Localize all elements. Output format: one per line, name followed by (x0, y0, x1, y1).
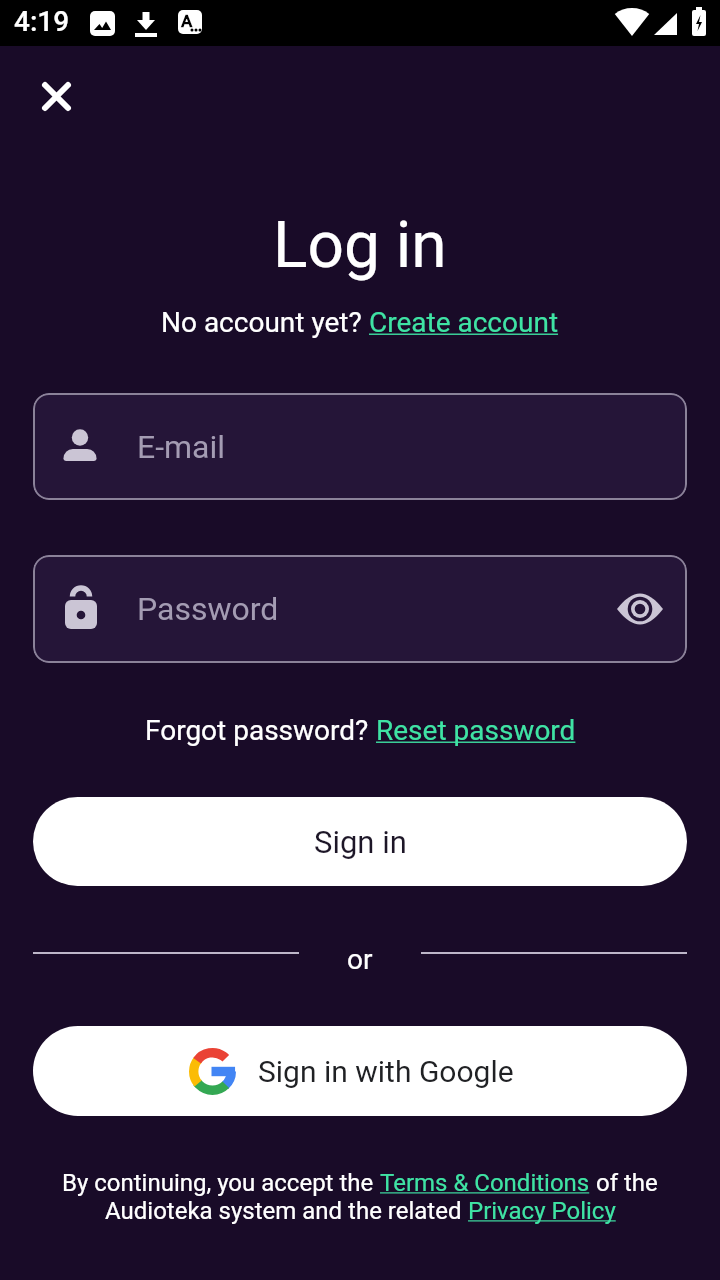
button[interactable]: Create account (369, 306, 559, 339)
staticText: Create account (369, 306, 559, 339)
button[interactable] (617, 593, 663, 625)
staticText: 4:19 (14, 5, 70, 38)
button[interactable]: Sign in with Google (33, 1026, 687, 1116)
staticText: Sign in with Google (258, 1054, 514, 1089)
staticText: A (181, 11, 193, 31)
staticText: Sign in (314, 824, 407, 860)
button[interactable] (32, 72, 80, 120)
button[interactable]: Reset password (376, 714, 576, 747)
button[interactable]: E-mail (33, 393, 687, 500)
staticText: By continuing, you accept the (62, 1169, 380, 1197)
staticText: Audioteka system and the related (105, 1197, 468, 1225)
staticText: E-mail (137, 428, 226, 466)
staticText: Terms & Conditions (380, 1169, 590, 1197)
button[interactable]: Sign in (33, 797, 687, 886)
button[interactable]: Terms & Conditions (380, 1169, 590, 1197)
staticText: Privacy Policy (468, 1197, 616, 1225)
staticText: or (347, 943, 373, 976)
button[interactable]: Privacy Policy (468, 1197, 616, 1225)
button[interactable]: Password (33, 555, 687, 663)
staticText: No account yet? (161, 306, 369, 339)
staticText: Forgot password? (145, 714, 376, 747)
staticText: Reset password (376, 714, 576, 747)
staticText: Password (137, 590, 279, 628)
staticText: of the (590, 1169, 658, 1197)
staticText: Log in (273, 208, 447, 283)
